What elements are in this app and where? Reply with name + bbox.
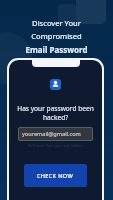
staticText: We'll never share your email address [28,144,83,148]
button[interactable]: CHECK NOW [24,164,87,187]
staticText: Discover Your [32,18,81,28]
staticText: CHECK NOW [37,172,74,180]
staticText: Has your password been hacked? [17,104,94,122]
staticText: Compromised [31,31,82,41]
button[interactable]: youremail@gmail.com [18,127,93,141]
staticText: Email Password [25,44,88,55]
staticText: youremail@gmail.com [22,130,81,138]
